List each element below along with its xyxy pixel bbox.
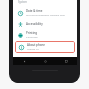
staticText: GMT+00:00 Greenwich Standard Time [26, 14, 65, 17]
button[interactable]: About phone [15, 41, 75, 53]
button[interactable]: Recent apps [56, 57, 77, 65]
staticText: System [18, 0, 27, 4]
staticText: 0 print jobs [26, 36, 38, 39]
button[interactable]: Date & time [13, 7, 77, 19]
button[interactable]: Accessibility [13, 19, 77, 29]
button[interactable]: Home [35, 57, 56, 65]
button[interactable]: Printing [13, 29, 77, 41]
staticText: Printing [26, 31, 38, 35]
staticText: Date & time [26, 9, 43, 13]
staticText: Accessibility [26, 22, 43, 26]
staticText: About phone [27, 43, 45, 47]
button[interactable]: Back [13, 57, 35, 65]
staticText: Android 7.0 [27, 48, 39, 51]
